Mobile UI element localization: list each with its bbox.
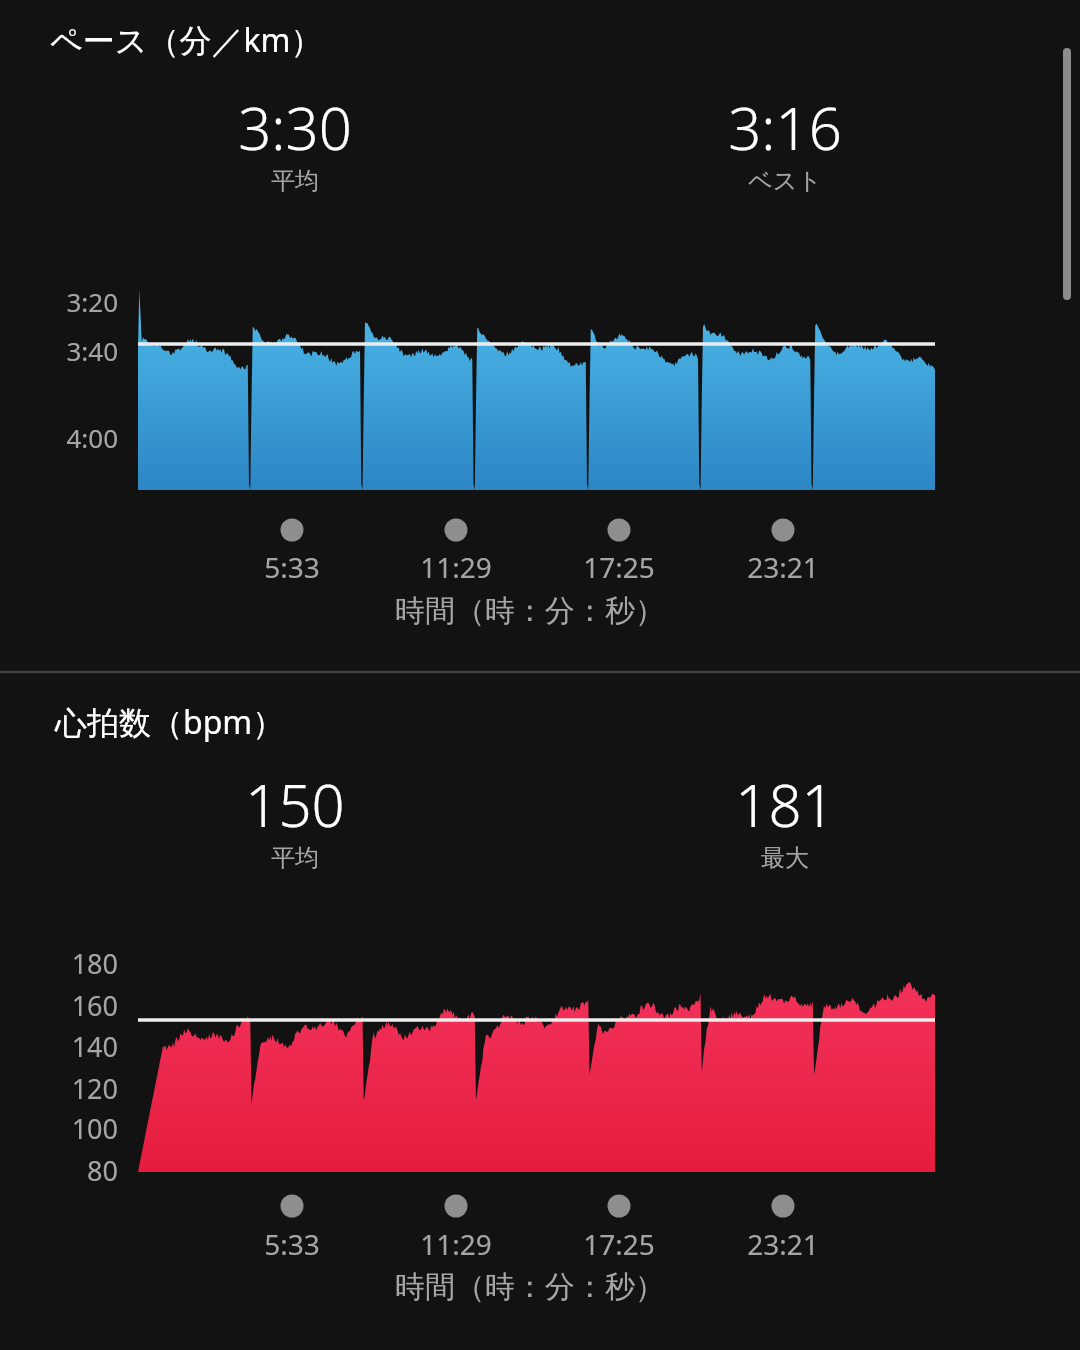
staticText: 平均 <box>150 843 440 873</box>
staticText: 心拍数（bpm） <box>55 700 285 744</box>
staticText: 120 <box>0 1070 118 1107</box>
staticText: 23:21 <box>673 548 893 586</box>
staticText: 5:33 <box>182 1225 402 1263</box>
staticText: 180 <box>0 945 118 982</box>
button[interactable]: 150 <box>150 765 440 885</box>
staticText: 最大 <box>640 843 930 873</box>
staticText: 160 <box>0 987 118 1024</box>
staticText: 時間（時：分：秒） <box>280 1268 780 1306</box>
staticText: 150 <box>150 765 440 844</box>
staticText: 140 <box>0 1028 118 1065</box>
staticText: 時間（時：分：秒） <box>280 592 780 630</box>
button[interactable]: 181 <box>640 765 930 885</box>
staticText: 181 <box>640 765 930 844</box>
staticText: 4:00 <box>0 420 118 455</box>
staticText: 平均 <box>150 166 440 196</box>
staticText: 3:16 <box>640 88 930 167</box>
staticText: 17:25 <box>509 1225 729 1263</box>
staticText: 17:25 <box>509 548 729 586</box>
staticText: 100 <box>0 1110 118 1147</box>
staticText: 5:33 <box>182 548 402 586</box>
staticText: ベスト <box>640 166 930 196</box>
staticText: 3:20 <box>0 284 118 319</box>
button[interactable]: 3:16 <box>640 88 930 208</box>
staticText: 11:29 <box>346 548 566 586</box>
staticText: 3:30 <box>150 88 440 167</box>
staticText: ペース（分／km） <box>50 18 323 62</box>
staticText: 3:40 <box>0 333 118 368</box>
button[interactable]: 3:30 <box>150 88 440 208</box>
staticText: 23:21 <box>673 1225 893 1263</box>
staticText: 80 <box>0 1152 118 1189</box>
staticText: 11:29 <box>346 1225 566 1263</box>
